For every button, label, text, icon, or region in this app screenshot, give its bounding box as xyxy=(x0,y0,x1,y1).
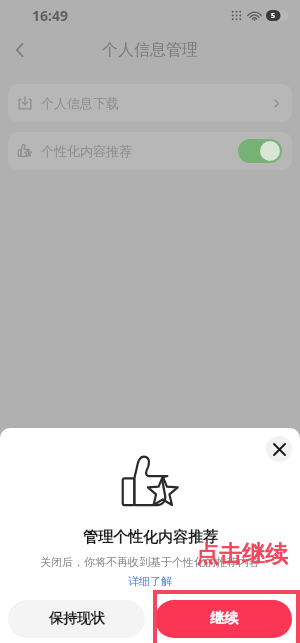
button[interactable]: Back xyxy=(0,30,40,70)
staticText: 16:49 xyxy=(32,6,68,25)
button[interactable]: 继续 xyxy=(155,600,292,638)
staticText: 继续 xyxy=(210,610,238,628)
staticText: 个性化内容推荐 xyxy=(41,143,132,159)
staticText: 个人信息下载 xyxy=(41,95,119,111)
button[interactable]: 保持现状 xyxy=(8,600,145,638)
staticText: 保持现状 xyxy=(49,610,105,628)
staticText: 关闭后，你将不再收到基于个性化的推荐内容 xyxy=(40,555,260,569)
button[interactable]: 个人信息下载 xyxy=(8,84,292,122)
staticText: 管理个性化内容推荐 xyxy=(83,528,218,547)
staticText: 点击继续 xyxy=(196,540,288,569)
button[interactable]: Close xyxy=(266,436,292,462)
button[interactable]: 个性化内容推荐 xyxy=(8,132,292,170)
staticText: 详细了解 xyxy=(128,574,172,588)
button[interactable]: Personalized content toggle xyxy=(238,139,282,163)
staticText: 个人信息管理 xyxy=(102,40,198,60)
staticText: 5 xyxy=(271,11,276,21)
button[interactable]: 详细了解 xyxy=(122,573,178,589)
